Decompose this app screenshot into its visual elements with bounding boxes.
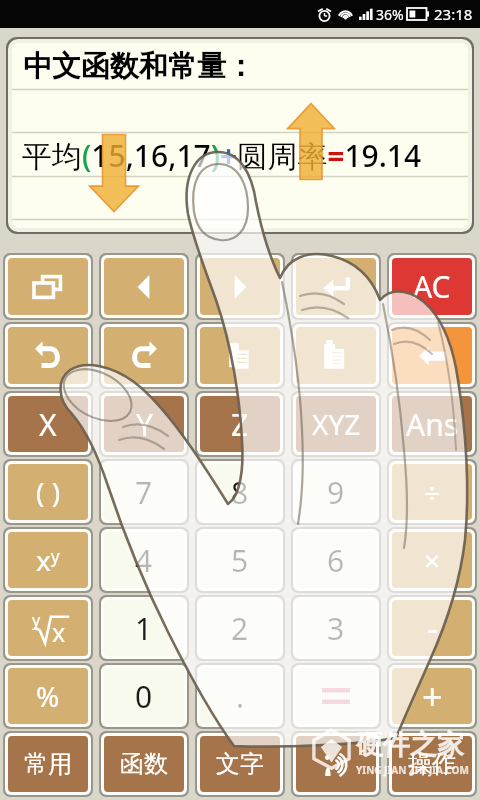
staticText: 硬件之家 — [356, 728, 464, 762]
staticText: 操作 — [408, 749, 456, 779]
button[interactable]: Copy — [200, 327, 280, 384]
staticText: X — [39, 404, 57, 445]
staticText: 函数 — [120, 749, 168, 779]
staticText: AC — [413, 266, 451, 307]
button[interactable]: % — [8, 668, 88, 724]
button[interactable]: 1 — [104, 600, 184, 656]
button[interactable]: Y — [104, 396, 184, 452]
button[interactable]: 3 — [296, 600, 376, 656]
button[interactable]: Enter — [296, 258, 376, 315]
staticText: 7 — [135, 472, 153, 513]
button[interactable]: 4 — [104, 532, 184, 588]
staticText: . — [236, 676, 245, 717]
button[interactable]: 7 — [104, 464, 184, 520]
staticText: × — [424, 541, 441, 579]
staticText: y — [32, 609, 41, 631]
button[interactable]: Undo — [8, 327, 88, 384]
staticText: 4 — [135, 540, 153, 581]
button[interactable]: ( ) — [8, 464, 88, 520]
button[interactable]: - — [392, 600, 472, 656]
button[interactable] — [296, 668, 376, 724]
button[interactable]: XYZ — [296, 396, 376, 452]
button[interactable]: AC — [392, 258, 472, 315]
button[interactable]: xy — [8, 532, 88, 588]
button[interactable]: Window — [8, 258, 88, 315]
staticText: 常用 — [24, 749, 72, 779]
button[interactable]: × — [392, 532, 472, 588]
staticText: 36% — [376, 5, 404, 24]
button[interactable]: Speak — [296, 736, 376, 792]
staticText: 2 — [231, 608, 249, 649]
staticText: x — [52, 615, 66, 649]
staticText: 中文函数和常量： — [23, 48, 255, 85]
button[interactable]: Redo — [104, 327, 184, 384]
staticText: 文字 — [216, 749, 264, 779]
button[interactable]: Ans — [392, 396, 472, 452]
button[interactable]: X — [8, 396, 88, 452]
staticText: XYZ — [312, 405, 361, 443]
button[interactable]: 0 — [104, 668, 184, 724]
staticText: 3 — [327, 608, 345, 649]
staticText: xy — [36, 541, 60, 579]
button[interactable]: 2 — [200, 600, 280, 656]
staticText: ( ) — [36, 473, 61, 511]
button[interactable]: + — [392, 668, 472, 724]
button[interactable]: 8 — [200, 464, 280, 520]
staticText: 平均(15,16,17)+圆周率=19.14 — [22, 135, 422, 176]
staticText: ÷ — [424, 473, 441, 511]
button[interactable]: Backspace — [392, 327, 472, 384]
staticText: 23:18 — [434, 4, 473, 24]
staticText: YING JIAN ZHI JIA.COM — [356, 763, 469, 777]
button[interactable]: . — [200, 668, 280, 724]
button[interactable]: Paste — [296, 327, 376, 384]
staticText: Y — [136, 404, 153, 445]
button[interactable]: 6 — [296, 532, 376, 588]
button[interactable]: Left — [104, 258, 184, 315]
staticText: 1 — [135, 608, 153, 649]
button[interactable]: Right — [200, 258, 280, 315]
staticText: 5 — [231, 540, 249, 581]
button[interactable]: Z — [200, 396, 280, 452]
button[interactable]: ÷ — [392, 464, 472, 520]
staticText: Z — [231, 404, 249, 445]
staticText: + — [422, 672, 443, 721]
staticText: 9 — [327, 472, 345, 513]
button[interactable]: 常用 — [8, 736, 88, 792]
staticText: - — [427, 605, 438, 651]
button[interactable]: 文字 — [200, 736, 280, 792]
staticText: 0 — [135, 676, 153, 717]
button[interactable]: y — [8, 600, 88, 656]
staticText: % — [36, 677, 60, 715]
staticText: 6 — [327, 540, 345, 581]
button[interactable]: 操作 — [392, 736, 472, 792]
staticText: Ans — [406, 404, 459, 445]
button[interactable]: 函数 — [104, 736, 184, 792]
button[interactable]: 5 — [200, 532, 280, 588]
staticText: 8 — [231, 472, 249, 513]
button[interactable]: 9 — [296, 464, 376, 520]
